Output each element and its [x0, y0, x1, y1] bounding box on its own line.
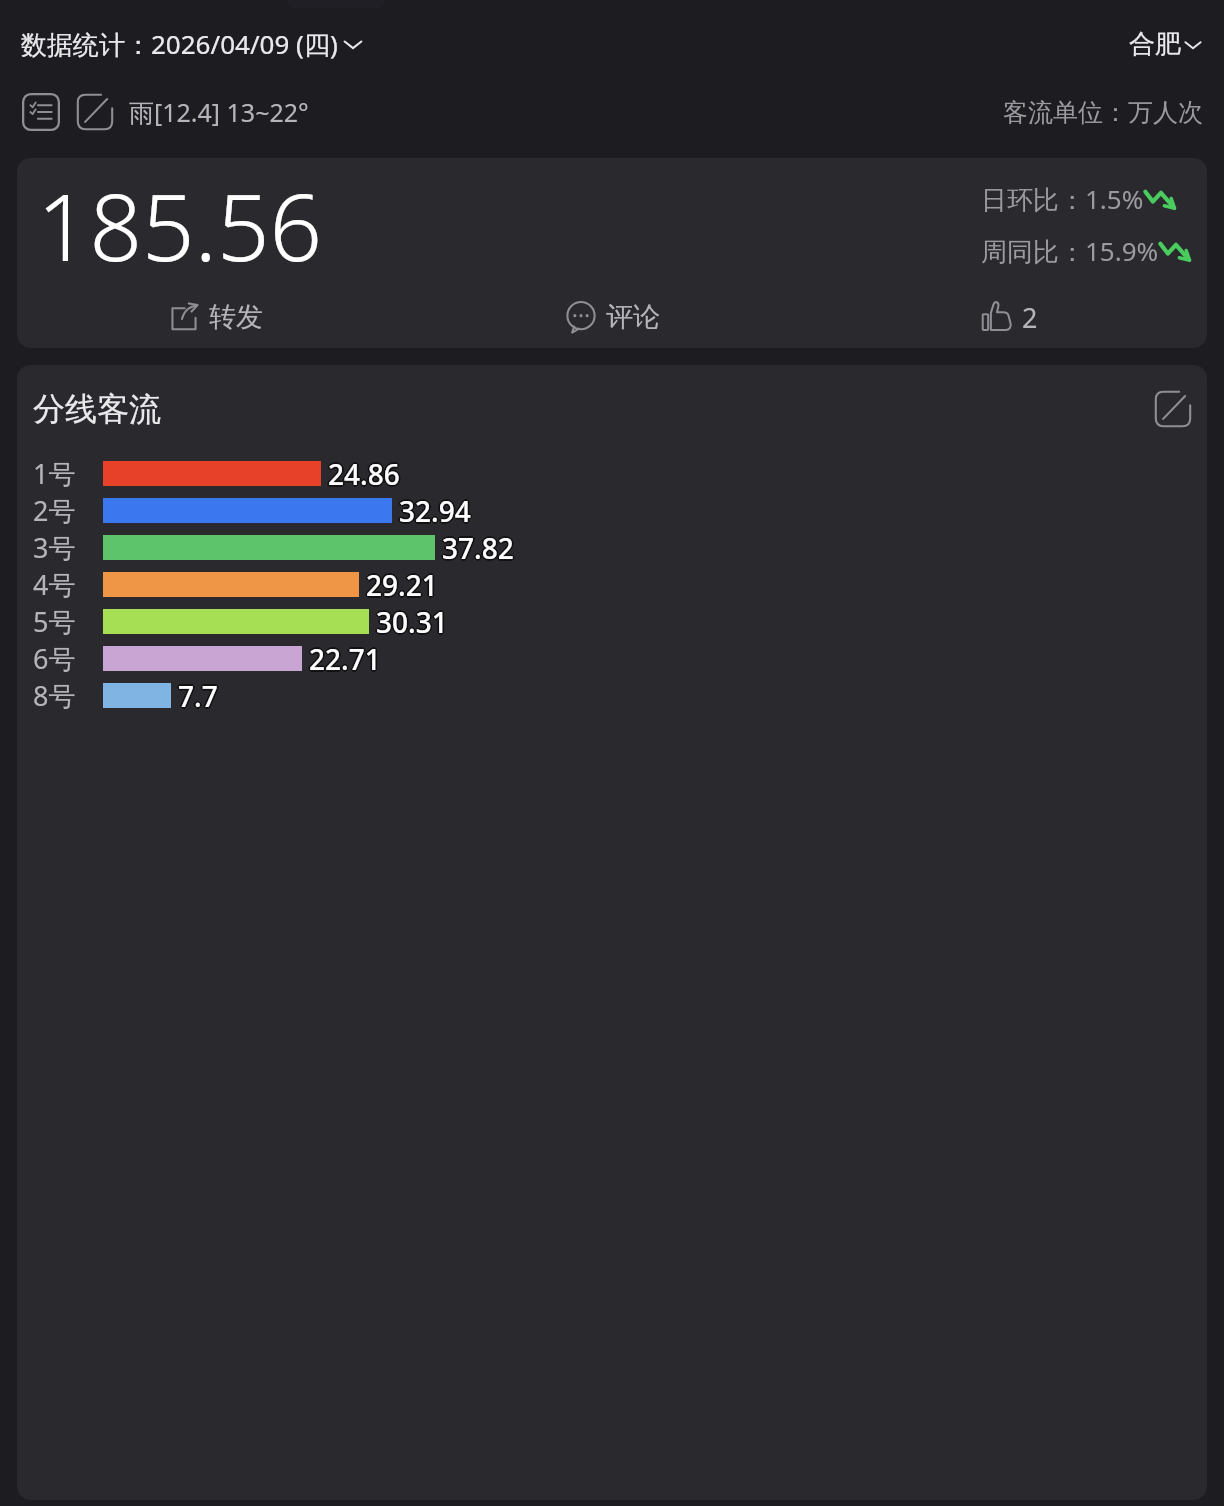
staticText: 雨[12.4] 13~22° — [129, 95, 309, 129]
staticText: 29.21 — [367, 565, 439, 602]
staticText: 30.31 — [375, 602, 447, 639]
button[interactable]: Edit — [75, 92, 115, 132]
staticText: 2号线 — [33, 492, 95, 529]
staticText: 32.94 — [401, 492, 473, 529]
staticText: 29.21 — [366, 566, 438, 603]
staticText: 24.86 — [329, 454, 401, 491]
staticText: 29.21 — [366, 564, 438, 601]
staticText: 24.86 — [328, 453, 400, 490]
staticText: 24.86 — [330, 455, 402, 492]
staticText: 转发 — [209, 300, 263, 334]
staticText: 29.21 — [365, 567, 437, 604]
staticText: 32.94 — [398, 491, 470, 528]
staticText: 7.7 — [176, 677, 216, 714]
staticText: 29.21 — [367, 567, 439, 604]
staticText: 22.71 — [310, 639, 382, 676]
staticText: 30.31 — [374, 603, 446, 640]
staticText: 5号线 — [33, 603, 95, 640]
button[interactable]: 转发 — [17, 292, 413, 342]
staticText: 6号线 — [33, 640, 95, 677]
staticText: 37.82 — [442, 527, 514, 564]
staticText: 32.94 — [400, 491, 472, 528]
staticText: 日环比：1.5% — [981, 181, 1144, 217]
button[interactable]: Statistics list — [21, 92, 61, 132]
staticText: 24.86 — [327, 454, 399, 491]
staticText: 22.71 — [307, 640, 379, 677]
staticText: 7.7 — [178, 679, 218, 716]
button[interactable]: 5号线 — [33, 603, 1207, 640]
staticText: 4号线 — [33, 566, 95, 603]
staticText: 数据统计：2026/04/09 (四) — [21, 26, 338, 62]
button[interactable]: 8号线 — [33, 677, 1207, 714]
staticText: 37.82 — [441, 530, 513, 567]
staticText: 37.82 — [440, 529, 512, 566]
staticText: 29.21 — [364, 566, 436, 603]
staticText: 客流单位：万人次 — [1003, 97, 1203, 128]
staticText: 7.7 — [177, 676, 217, 713]
staticText: 22.71 — [310, 641, 382, 678]
staticText: 37.82 — [443, 530, 515, 567]
staticText: 30.31 — [378, 603, 450, 640]
staticText: 7.7 — [177, 678, 217, 715]
button[interactable]: 数据统计：2026/04/09 (四) — [21, 26, 364, 62]
staticText: 3号线 — [33, 529, 95, 566]
staticText: 29.21 — [368, 566, 440, 603]
staticText: 32.94 — [399, 490, 471, 527]
staticText: 30.31 — [376, 603, 448, 640]
staticText: 32.94 — [399, 494, 471, 531]
button[interactable]: 6号线 — [33, 640, 1207, 677]
staticText: 30.31 — [377, 604, 449, 641]
staticText: 7.7 — [180, 677, 220, 714]
staticText: 30.31 — [377, 602, 449, 639]
staticText: 30.31 — [375, 604, 447, 641]
staticText: 24.86 — [328, 455, 400, 492]
button[interactable]: 3号线 — [33, 529, 1207, 566]
button[interactable]: 1号线 — [33, 455, 1207, 492]
staticText: 22.71 — [309, 642, 381, 679]
button[interactable]: 评论 — [413, 292, 810, 342]
staticText: 30.31 — [376, 601, 448, 638]
staticText: 评论 — [606, 300, 660, 334]
button[interactable]: 2号线 — [33, 492, 1207, 529]
staticText: 37.82 — [441, 528, 513, 565]
button[interactable]: 4号线 — [33, 566, 1207, 603]
button[interactable]: 2 — [810, 292, 1207, 342]
staticText: 185.56 — [37, 163, 323, 288]
staticText: 22.71 — [311, 640, 383, 677]
staticText: 29.21 — [366, 568, 438, 605]
staticText: 周同比：15.9% — [981, 233, 1159, 269]
staticText: 30.31 — [376, 605, 448, 642]
staticText: 37.82 — [442, 529, 514, 566]
staticText: 合肥 — [1129, 28, 1181, 61]
staticText: 22.71 — [308, 639, 380, 676]
staticText: 24.86 — [326, 455, 398, 492]
staticText: 7.7 — [179, 676, 219, 713]
staticText: 24.86 — [328, 457, 400, 494]
button[interactable]: 合肥 — [1129, 28, 1203, 61]
staticText: 37.82 — [443, 528, 515, 565]
staticText: 22.71 — [308, 641, 380, 678]
staticText: 37.82 — [444, 529, 516, 566]
staticText: 37.82 — [442, 531, 514, 568]
staticText: 32.94 — [400, 493, 472, 530]
staticText: 32.94 — [398, 493, 470, 530]
staticText: 7.7 — [178, 677, 218, 714]
staticText: 2 — [1022, 299, 1038, 336]
button[interactable]: Edit chart — [1151, 387, 1195, 431]
staticText: 1号线 — [33, 455, 95, 492]
staticText: 分线客流 — [33, 389, 161, 429]
staticText: 32.94 — [399, 492, 471, 529]
staticText: 22.71 — [309, 640, 381, 677]
staticText: 29.21 — [365, 565, 437, 602]
staticText: 32.94 — [397, 492, 469, 529]
staticText: 7.7 — [178, 675, 218, 712]
staticText: 8号线 — [33, 677, 95, 714]
staticText: 22.71 — [309, 638, 381, 675]
staticText: 24.86 — [329, 456, 401, 493]
staticText: 24.86 — [327, 456, 399, 493]
staticText: 7.7 — [179, 678, 219, 715]
